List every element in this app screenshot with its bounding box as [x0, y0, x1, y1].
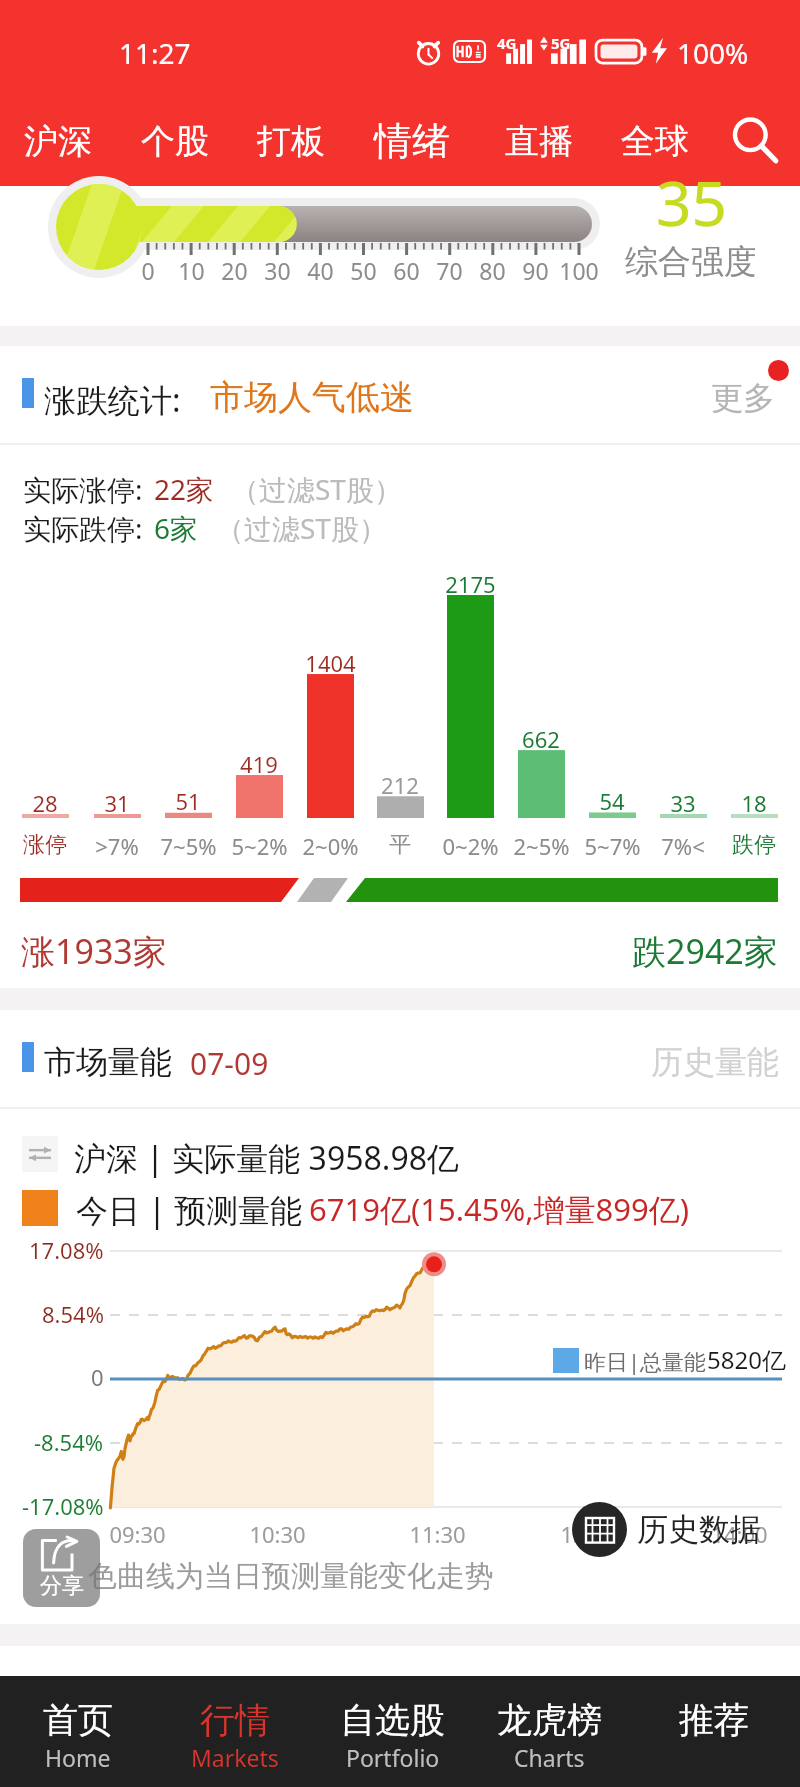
button[interactable]: 涨跌统计:	[0, 346, 800, 443]
staticText: 5~2%	[231, 831, 288, 861]
staticText: 沪深 | 实际量能 3958.98亿	[74, 1136, 459, 1180]
staticText: 个股	[141, 120, 209, 163]
staticText: 662	[522, 724, 560, 754]
staticText: Home	[45, 1742, 111, 1773]
staticText: 跌2942家	[632, 928, 778, 974]
staticText: 33	[670, 788, 696, 818]
staticText: 60	[393, 255, 420, 286]
button[interactable]: 推荐	[639, 1676, 789, 1787]
staticText: 10	[178, 255, 205, 286]
staticText: 0	[141, 255, 155, 286]
staticText: 1404	[305, 648, 356, 678]
staticText: 历史量能	[651, 1042, 779, 1082]
staticText: 涨停	[23, 831, 67, 859]
staticText: 70	[436, 255, 463, 286]
staticText: 20	[221, 255, 248, 286]
staticText: 10:30	[249, 1519, 306, 1549]
button[interactable]: 历史数据	[572, 1502, 761, 1557]
staticText: 31	[104, 788, 130, 818]
staticText: 色曲线为当日预测量能变化走势	[88, 1558, 494, 1595]
staticText: 13:00	[560, 1519, 617, 1549]
staticText: 涨1933家	[21, 928, 167, 974]
button[interactable]: 全球	[611, 96, 699, 186]
staticText: 6家	[154, 509, 199, 547]
staticText: 昨日|总量能	[584, 1346, 707, 1376]
staticText: Charts	[514, 1742, 585, 1773]
staticText: （过滤ST股）	[231, 470, 402, 508]
staticText: 11:27	[119, 34, 191, 72]
staticText: 07-09	[190, 1043, 269, 1084]
staticText: 更多	[711, 378, 775, 418]
staticText: 14:00	[711, 1519, 768, 1549]
staticText: （过滤ST股）	[216, 509, 387, 547]
button[interactable]: 自选股	[317, 1676, 467, 1787]
button[interactable]: 打板	[247, 96, 335, 186]
staticText: 30	[264, 255, 291, 286]
staticText: 自选股	[340, 1698, 445, 1742]
staticText: 情绪	[374, 117, 450, 165]
staticText: 18	[741, 788, 767, 818]
staticText: 跌停	[732, 831, 776, 859]
staticText: 6719亿(15.45%,增量899亿)	[309, 1188, 690, 1230]
staticText: 5G	[551, 33, 571, 53]
button[interactable]: 个股	[131, 96, 219, 186]
staticText: 平	[389, 831, 411, 859]
staticText: 0	[91, 1362, 104, 1392]
staticText: 7%<	[661, 831, 705, 861]
staticText: 35	[656, 160, 727, 244]
button[interactable]: 龙虎榜	[474, 1676, 624, 1787]
button[interactable]: 行情	[160, 1676, 310, 1787]
staticText: 今日 | 预测量能	[76, 1188, 303, 1232]
staticText: 51	[175, 786, 201, 816]
button[interactable]: 情绪	[364, 96, 460, 186]
staticText: 28	[32, 788, 58, 818]
staticText: 419	[240, 749, 278, 779]
staticText: 100%	[677, 34, 749, 72]
button[interactable]: Share	[23, 1529, 100, 1607]
staticText: 17.08%	[29, 1235, 104, 1265]
staticText: Markets	[191, 1742, 279, 1773]
staticText: 50	[350, 255, 377, 286]
staticText: >7%	[95, 831, 139, 861]
staticText: 8.54%	[42, 1299, 104, 1329]
staticText: 11:30	[409, 1519, 466, 1549]
staticText: 沪深	[24, 120, 92, 163]
button[interactable]: 直播	[495, 96, 583, 186]
staticText: 40	[307, 255, 334, 286]
staticText: 5~7%	[584, 831, 641, 861]
staticText: 龙虎榜	[497, 1698, 602, 1742]
staticText: -8.54%	[34, 1427, 104, 1457]
staticText: 2~0%	[302, 831, 359, 861]
staticText: 2175	[445, 569, 496, 599]
staticText: 5820亿	[707, 1343, 786, 1376]
staticText: 0~2%	[442, 831, 499, 861]
staticText: Portfolio	[346, 1742, 440, 1773]
button[interactable]: 市场量能	[0, 1010, 800, 1107]
button[interactable]: 沪深	[14, 96, 102, 186]
staticText: 80	[479, 255, 506, 286]
staticText: 212	[381, 770, 419, 800]
staticText: 首页	[43, 1698, 113, 1742]
staticText: 分享	[40, 1572, 84, 1600]
staticText: 打板	[257, 120, 325, 163]
staticText: 54	[599, 786, 625, 816]
staticText: 2~5%	[513, 831, 570, 861]
staticText: 综合强度	[625, 241, 757, 283]
staticText: 涨跌统计:	[44, 378, 181, 422]
staticText: 推荐	[679, 1698, 749, 1742]
staticText: 市场量能	[44, 1042, 172, 1082]
button[interactable]: Search	[716, 101, 794, 179]
staticText: 100	[559, 255, 599, 286]
staticText: 4G	[497, 33, 517, 53]
button[interactable]: 首页	[3, 1676, 153, 1787]
staticText: 历史数据	[637, 1510, 761, 1549]
staticText: 7~5%	[160, 831, 217, 861]
staticText: 实际涨停:	[23, 470, 143, 508]
staticText: 行情	[200, 1698, 270, 1742]
staticText: 09:30	[109, 1519, 166, 1549]
staticText: 22家	[154, 470, 215, 508]
staticText: -17.08%	[22, 1491, 104, 1521]
staticText: 市场人气低迷	[210, 376, 414, 419]
staticText: 全球	[621, 120, 689, 163]
staticText: 实际跌停:	[23, 509, 143, 547]
